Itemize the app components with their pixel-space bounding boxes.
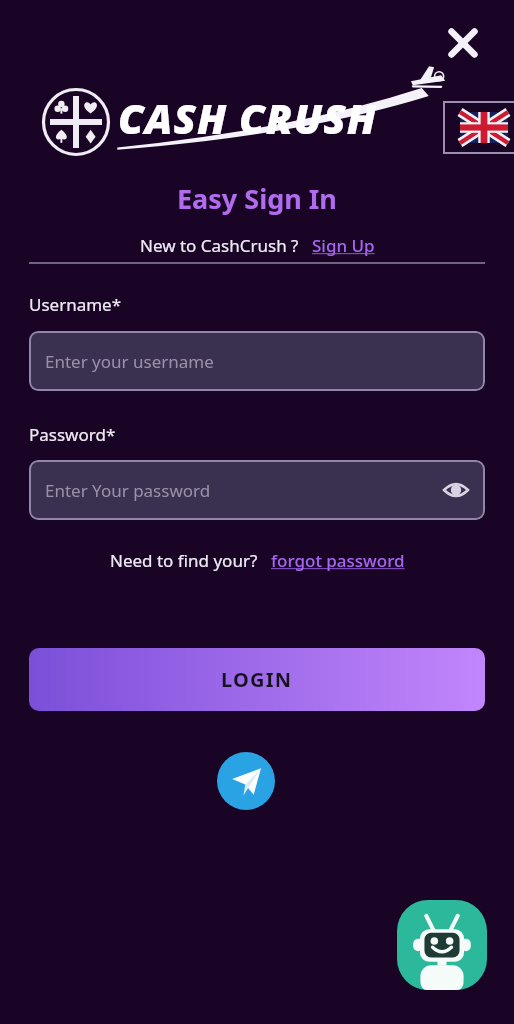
button[interactable]: Enter Your password	[29, 460, 485, 520]
staticText: New to CashCrush ?	[140, 234, 299, 257]
staticText: Easy Sign In	[177, 180, 337, 217]
staticText: Need to find your?	[110, 549, 258, 572]
button[interactable]: forgot password	[271, 549, 405, 572]
button[interactable]: Enter your username	[29, 331, 485, 391]
button[interactable]: Language	[443, 101, 514, 154]
button[interactable]: LOGIN	[29, 648, 485, 711]
button[interactable]: Chat bot	[397, 900, 487, 990]
button[interactable]: Show password	[439, 473, 473, 507]
staticText: LOGIN	[221, 666, 293, 693]
button[interactable]: Sign Up	[312, 234, 375, 257]
staticText: Sign Up	[312, 234, 375, 257]
staticText: Password*	[29, 423, 116, 446]
staticText: CASH CRUSH	[118, 90, 377, 146]
staticText: forgot password	[271, 549, 405, 572]
button[interactable]: Close	[438, 18, 488, 68]
staticText: Username*	[29, 293, 122, 316]
button[interactable]: Telegram	[217, 752, 275, 810]
staticText: Enter Your password	[45, 479, 211, 502]
staticText: Enter your username	[45, 350, 214, 373]
